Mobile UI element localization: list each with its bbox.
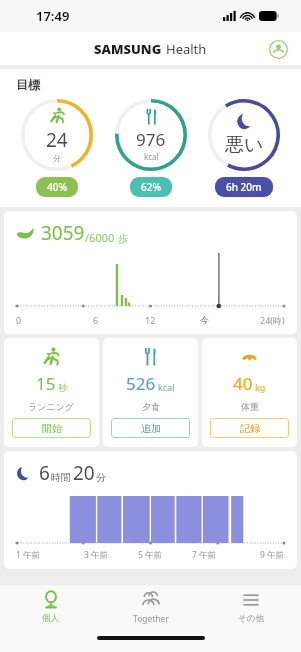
button[interactable]: 個人 <box>0 585 101 629</box>
staticText: 15 <box>36 372 56 395</box>
staticText: 0 <box>16 314 22 326</box>
staticText: Health <box>166 40 207 58</box>
staticText: 5 午前 <box>138 549 163 561</box>
staticText: 体重 <box>241 401 259 412</box>
staticText: 24 <box>46 127 68 153</box>
staticText: 526 <box>126 372 156 395</box>
staticText: 6 <box>93 314 99 326</box>
button[interactable]: 526 <box>103 338 198 447</box>
staticText: 個人 <box>42 613 59 624</box>
staticText: 24(時) <box>260 314 285 326</box>
staticText: 追加 <box>141 422 161 435</box>
staticText: SAMSUNG <box>94 40 162 58</box>
staticText: kcal <box>144 151 159 162</box>
button[interactable]: 15 <box>4 338 99 447</box>
button[interactable]: 40 <box>202 338 297 447</box>
staticText: 7 午前 <box>192 549 217 561</box>
staticText: 20 <box>73 460 95 486</box>
button[interactable]: 追加 <box>111 418 190 438</box>
staticText: 40% <box>47 180 67 194</box>
staticText: 歩 <box>118 232 128 245</box>
staticText: /6000 <box>85 230 115 245</box>
button[interactable]: 開始 <box>12 418 91 438</box>
staticText: 目標 <box>16 77 40 92</box>
staticText: 9 午前 <box>260 549 285 561</box>
staticText: 今 <box>200 314 209 325</box>
staticText: ランニング <box>28 401 75 412</box>
button[interactable]: 6h 20m <box>215 177 273 197</box>
staticText: 開始 <box>42 422 62 435</box>
button[interactable]: 悪い <box>207 98 281 172</box>
staticText: 1 午前 <box>16 549 41 561</box>
button[interactable]: 976 <box>114 98 188 172</box>
staticText: 12 <box>145 314 156 326</box>
button[interactable]: 記録 <box>210 418 289 438</box>
staticText: 6 <box>39 460 50 486</box>
button[interactable]: その他 <box>201 585 301 629</box>
staticText: 分 <box>96 471 106 484</box>
staticText: 62% <box>141 180 161 194</box>
staticText: 6h 20m <box>226 180 262 194</box>
button[interactable]: 3059 <box>4 211 297 334</box>
button[interactable]: Together <box>101 585 201 629</box>
staticText: kg <box>255 381 266 393</box>
staticText: 976 <box>136 128 166 151</box>
staticText: Together <box>133 613 169 625</box>
staticText: 時間 <box>51 471 71 484</box>
staticText: 夕食 <box>142 401 160 412</box>
button[interactable]: 40% <box>36 177 78 197</box>
button[interactable]: 24 <box>20 98 94 172</box>
button[interactable]: 6 <box>4 451 297 569</box>
staticText: 3 午前 <box>84 549 109 561</box>
staticText: 17:49 <box>36 7 70 25</box>
button[interactable]: 62% <box>130 177 172 197</box>
staticText: 秒 <box>58 382 67 393</box>
staticText: kcal <box>158 381 175 393</box>
button[interactable]: Profile <box>265 36 291 62</box>
staticText: その他 <box>238 613 264 624</box>
staticText: 悪い <box>225 133 264 157</box>
staticText: 3059 <box>41 220 85 246</box>
staticText: 分 <box>53 153 61 163</box>
staticText: 40 <box>233 372 253 395</box>
staticText: 記録 <box>240 422 260 435</box>
